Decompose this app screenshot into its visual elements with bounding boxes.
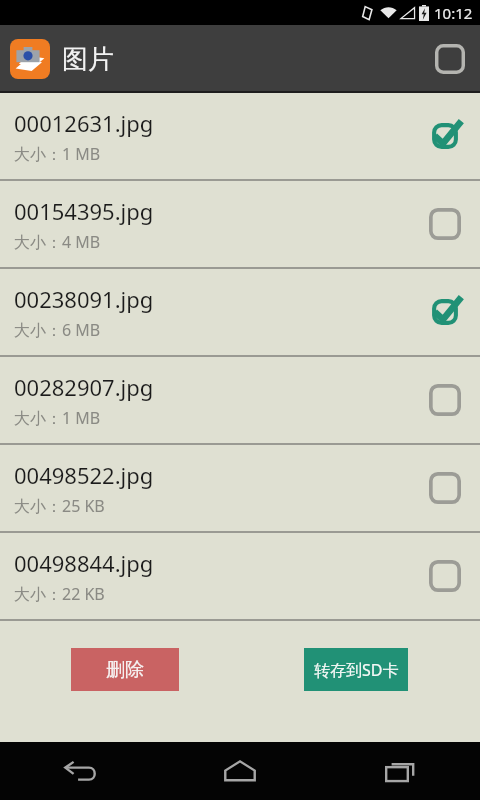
staticText: 00498522.jpg — [14, 460, 154, 490]
button[interactable]: Home — [160, 742, 320, 800]
button[interactable]: 删除 — [71, 648, 179, 691]
staticText: 00498844.jpg — [14, 548, 154, 578]
staticText: 00238091.jpg — [14, 284, 154, 314]
button[interactable]: 00238091.jpg — [0, 269, 480, 355]
button[interactable]: 转存到SD卡 — [304, 648, 408, 691]
staticText: 10:12 — [434, 3, 473, 23]
staticText: 大小：1 MB — [14, 143, 101, 165]
button[interactable]: Recent apps — [320, 742, 480, 800]
button[interactable]: 00154395.jpg — [0, 181, 480, 267]
button[interactable]: 00282907.jpg — [0, 357, 480, 443]
staticText: 图片 — [62, 43, 114, 76]
staticText: 大小：6 MB — [14, 319, 101, 341]
staticText: 大小：4 MB — [14, 231, 101, 253]
staticText: 00012631.jpg — [14, 108, 154, 138]
staticText: 大小：1 MB — [14, 407, 101, 429]
button[interactable]: 00498844.jpg — [0, 533, 480, 619]
staticText: 大小：25 KB — [14, 495, 105, 517]
button[interactable]: 00012631.jpg — [0, 93, 480, 179]
button[interactable]: Select all — [433, 42, 467, 76]
button[interactable]: 00498522.jpg — [0, 445, 480, 531]
staticText: 00282907.jpg — [14, 372, 154, 402]
staticText: 删除 — [106, 658, 144, 682]
button[interactable]: Back — [0, 742, 160, 800]
staticText: 大小：22 KB — [14, 583, 105, 605]
staticText: 00154395.jpg — [14, 196, 154, 226]
staticText: 转存到SD卡 — [314, 659, 399, 681]
